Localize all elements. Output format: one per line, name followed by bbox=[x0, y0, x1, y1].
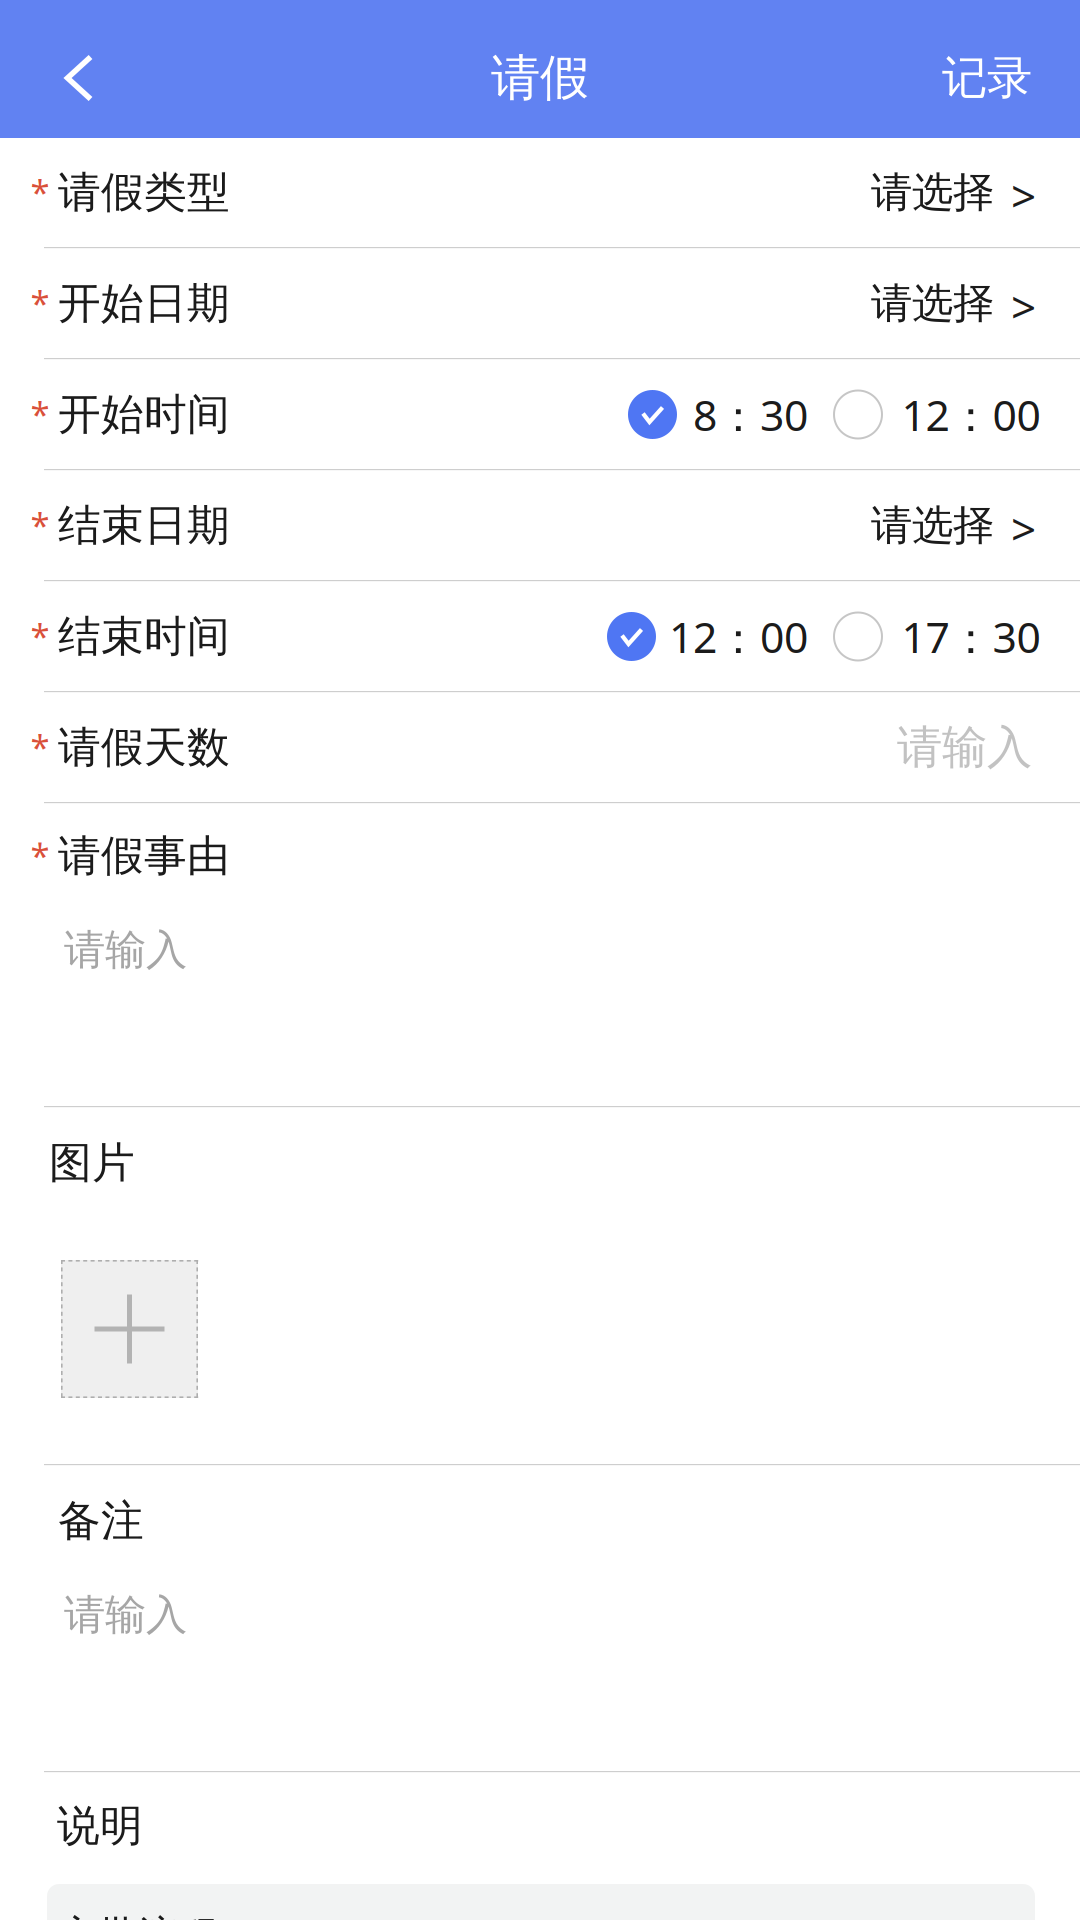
staticText: 请输入 bbox=[897, 720, 1032, 775]
button[interactable]: 8：30 bbox=[628, 386, 808, 443]
staticText: * bbox=[30, 168, 49, 214]
button[interactable]: Add photo bbox=[61, 1260, 198, 1398]
staticText: * bbox=[30, 279, 49, 325]
staticText: 审批流程 bbox=[58, 1911, 218, 1920]
staticText: * bbox=[30, 832, 49, 878]
staticText: 结束时间 bbox=[58, 610, 230, 663]
staticText: 12：00 bbox=[901, 386, 1040, 443]
staticText: 备注 bbox=[58, 1495, 144, 1547]
staticText: > bbox=[1011, 277, 1036, 336]
button[interactable]: * bbox=[0, 249, 1080, 358]
button[interactable]: * bbox=[0, 471, 1080, 580]
staticText: > bbox=[1011, 166, 1036, 225]
staticText: 开始时间 bbox=[58, 388, 230, 441]
staticText: 请选择 bbox=[871, 167, 994, 218]
staticText: 8：30 bbox=[693, 386, 808, 443]
button[interactable]: 请输入 bbox=[29, 1593, 1080, 1637]
staticText: 结束日期 bbox=[58, 499, 230, 552]
button[interactable]: 记录 bbox=[942, 18, 1080, 138]
staticText: 图片 bbox=[49, 1137, 135, 1189]
staticText: 请选择 bbox=[871, 500, 994, 551]
button[interactable]: 12：00 bbox=[607, 608, 808, 665]
staticText: 请假事由 bbox=[58, 830, 230, 882]
staticText: 请假类型 bbox=[58, 166, 230, 219]
staticText: > bbox=[1011, 499, 1036, 558]
staticText: * bbox=[30, 501, 49, 547]
button[interactable]: 请输入 bbox=[29, 928, 1080, 972]
staticText: 12：00 bbox=[669, 608, 808, 665]
button[interactable]: 12：00 bbox=[834, 386, 1042, 443]
button[interactable]: Back bbox=[0, 18, 158, 138]
staticText: 请假 bbox=[491, 48, 589, 108]
staticText: 请假天数 bbox=[58, 721, 230, 774]
staticText: 请输入 bbox=[64, 925, 187, 975]
staticText: 记录 bbox=[942, 50, 1032, 106]
staticText: * bbox=[30, 723, 49, 769]
button[interactable]: * bbox=[0, 693, 1080, 802]
staticText: 开始日期 bbox=[58, 277, 230, 330]
button[interactable]: 17：30 bbox=[834, 608, 1042, 665]
staticText: * bbox=[30, 390, 49, 436]
staticText: 请输入 bbox=[64, 1590, 187, 1640]
staticText: 17：30 bbox=[901, 608, 1040, 665]
staticText: 说明 bbox=[57, 1800, 143, 1852]
staticText: 请选择 bbox=[871, 278, 994, 329]
staticText: * bbox=[30, 612, 49, 658]
button[interactable]: * bbox=[0, 138, 1080, 247]
